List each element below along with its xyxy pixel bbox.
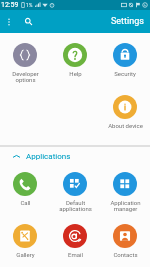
staticText: About device (108, 122, 143, 129)
button[interactable]: Email (50, 224, 100, 258)
staticText: Developer options (12, 70, 39, 83)
button[interactable]: About device (100, 95, 150, 129)
button[interactable]: Default applications (50, 172, 100, 212)
staticText: Default applications (59, 199, 92, 212)
button[interactable]: Call (0, 172, 50, 206)
staticText: Call (20, 199, 31, 206)
staticText: Applications (26, 152, 71, 161)
button[interactable]: Contacts (100, 224, 150, 258)
staticText: Email (68, 251, 83, 258)
button[interactable]: Help (50, 43, 100, 77)
staticText: Settings (111, 16, 144, 27)
button[interactable]: Search (22, 15, 35, 28)
button[interactable]: Applications (0, 147, 150, 166)
button[interactable]: Application manager (100, 172, 150, 212)
button[interactable]: Gallery (0, 224, 50, 258)
staticText: 12:59 (1, 1, 19, 9)
staticText: Gallery (16, 251, 35, 258)
staticText: Contacts (113, 251, 138, 258)
staticText: Help (69, 70, 82, 77)
button[interactable]: More options (3, 16, 15, 28)
button[interactable]: Developer options (0, 43, 50, 83)
staticText: 1% (26, 2, 33, 8)
staticText: Application manager (110, 199, 141, 212)
button[interactable]: Security (100, 43, 150, 77)
staticText: Security (114, 70, 136, 77)
